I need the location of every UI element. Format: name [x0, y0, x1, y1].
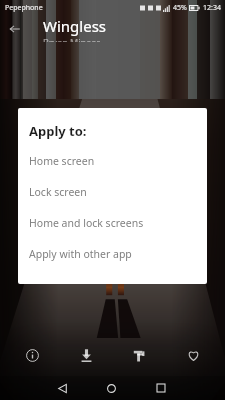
button[interactable]: Apply with other app: [18, 238, 207, 269]
staticText: Home screen: [29, 154, 95, 168]
staticText: Bryan Minear: [43, 36, 100, 42]
button[interactable]: Information: [17, 340, 47, 370]
button[interactable]: Home and lock screens: [18, 207, 207, 238]
button[interactable]: Favourite: [178, 340, 208, 370]
button[interactable]: Home: [99, 376, 123, 400]
button[interactable]: Download: [71, 340, 101, 370]
button[interactable]: Apply wallpaper: [124, 340, 154, 370]
staticText: 12:34: [203, 3, 221, 13]
staticText: Apply with other app: [29, 247, 132, 261]
staticText: Wingless: [43, 16, 107, 36]
button[interactable]: Lock screen: [18, 176, 207, 207]
button[interactable]: Back: [50, 376, 74, 400]
staticText: 45%: [173, 3, 187, 13]
staticText: Apply to:: [29, 122, 87, 140]
button[interactable]: Back: [0, 16, 30, 42]
staticText: Pepephone: [5, 3, 43, 13]
button[interactable]: Home screen: [18, 145, 207, 176]
staticText: Home and lock screens: [29, 216, 144, 230]
button[interactable]: Recent apps: [149, 376, 173, 400]
staticText: Lock screen: [29, 185, 87, 199]
